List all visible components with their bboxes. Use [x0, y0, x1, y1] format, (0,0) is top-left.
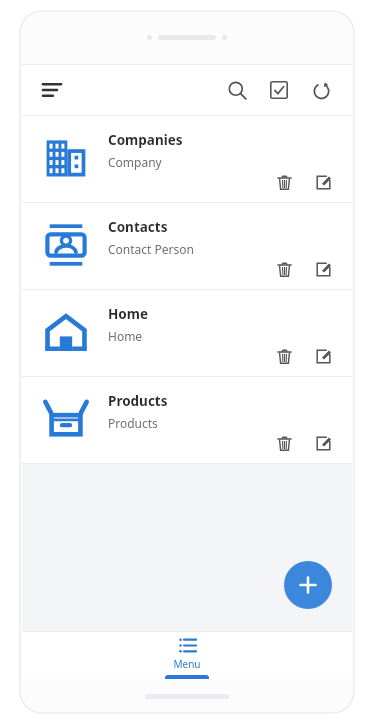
staticText: Contact Person	[108, 241, 194, 257]
button[interactable]: Menu	[127, 631, 247, 679]
button[interactable]: Contacts	[22, 203, 352, 290]
button[interactable]: Products	[22, 377, 352, 464]
staticText: Home	[108, 305, 148, 323]
staticText: Menu	[173, 657, 201, 671]
staticText: Companies	[108, 131, 183, 149]
button[interactable]: Select all	[262, 73, 296, 107]
button[interactable]: Edit Companies	[308, 167, 338, 197]
button[interactable]: Edit Products	[308, 428, 338, 458]
button[interactable]: Add	[284, 561, 332, 609]
button[interactable]: Delete Contacts	[269, 254, 299, 284]
button[interactable]: Edit Home	[308, 341, 338, 371]
staticText: Company	[108, 154, 162, 170]
button[interactable]: Home	[22, 290, 352, 377]
staticText: Products	[108, 415, 158, 431]
staticText: Products	[108, 392, 168, 410]
button[interactable]: Delete Home	[269, 341, 299, 371]
button[interactable]: Delete Companies	[269, 167, 299, 197]
button[interactable]: Companies	[22, 116, 352, 203]
button[interactable]: Sort	[36, 74, 68, 106]
button[interactable]: Search	[220, 73, 254, 107]
button[interactable]: Edit Contacts	[308, 254, 338, 284]
staticText: Home	[108, 328, 143, 344]
staticText: Contacts	[108, 218, 168, 236]
button[interactable]: Delete Products	[269, 428, 299, 458]
button[interactable]: Refresh	[304, 73, 338, 107]
